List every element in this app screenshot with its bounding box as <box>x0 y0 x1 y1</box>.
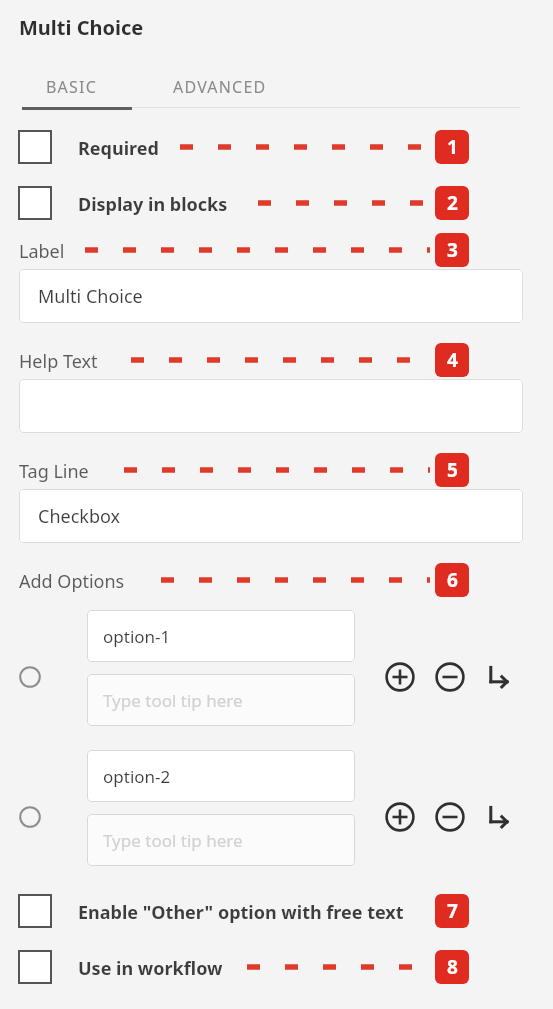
staticText: Multi Choice <box>19 14 144 41</box>
staticText: Display in blocks <box>78 192 228 217</box>
staticText: Enable "Other" option with free text <box>78 900 404 925</box>
staticText: 5 <box>447 457 458 483</box>
button[interactable]: Remove option <box>433 800 467 834</box>
staticText: ADVANCED <box>173 76 267 98</box>
button[interactable]: Branch option <box>481 660 515 694</box>
staticText: Add Options <box>19 569 125 594</box>
button[interactable]: option-2 <box>87 750 355 802</box>
button[interactable]: BASIC <box>22 67 132 107</box>
staticText: Multi Choice <box>38 284 143 309</box>
staticText: option-2 <box>103 765 171 788</box>
button[interactable]: Display in blocks <box>0 175 553 231</box>
staticText: Type tool tip here <box>103 689 243 712</box>
button[interactable] <box>18 950 52 984</box>
button[interactable]: 3 <box>435 233 469 267</box>
staticText: 4 <box>447 347 458 373</box>
button[interactable]: Enable "Other" option with free text <box>0 883 553 939</box>
button[interactable]: Use in workflow <box>0 939 553 995</box>
button[interactable]: 5 <box>435 453 469 487</box>
button[interactable]: Multi Choice <box>19 269 523 323</box>
staticText: Use in workflow <box>78 956 223 981</box>
button[interactable]: Add option <box>383 800 417 834</box>
button[interactable] <box>18 186 52 220</box>
staticText: Required <box>78 136 159 161</box>
button[interactable]: Remove option <box>433 660 467 694</box>
button[interactable]: 7 <box>435 894 469 928</box>
button[interactable]: Type tool tip here <box>87 814 355 866</box>
button[interactable]: Required <box>0 119 553 175</box>
staticText: 6 <box>447 567 458 593</box>
button[interactable]: 1 <box>435 130 469 164</box>
staticText: Type tool tip here <box>103 829 243 852</box>
staticText: Label <box>19 239 65 264</box>
button[interactable]: Select option <box>18 665 42 689</box>
staticText: 8 <box>447 954 458 980</box>
button[interactable] <box>18 130 52 164</box>
staticText: 7 <box>447 898 458 924</box>
button[interactable] <box>19 379 523 433</box>
button[interactable]: Checkbox <box>19 489 523 543</box>
button[interactable]: ADVANCED <box>150 67 290 107</box>
staticText: 2 <box>447 190 458 216</box>
button[interactable] <box>18 894 52 928</box>
button[interactable]: option-1 <box>87 610 355 662</box>
staticText: option-1 <box>103 625 171 648</box>
button[interactable]: 2 <box>435 186 469 220</box>
button[interactable]: 4 <box>435 343 469 377</box>
button[interactable]: Type tool tip here <box>87 674 355 726</box>
button[interactable]: 8 <box>435 950 469 984</box>
staticText: BASIC <box>46 76 97 98</box>
button[interactable]: Select option <box>18 805 42 829</box>
staticText: 1 <box>447 134 458 160</box>
staticText: Checkbox <box>38 504 121 529</box>
staticText: Tag Line <box>19 459 89 484</box>
button[interactable]: Add option <box>383 660 417 694</box>
button[interactable]: Branch option <box>481 800 515 834</box>
staticText: 3 <box>447 237 458 263</box>
button[interactable]: 6 <box>435 563 469 597</box>
staticText: Help Text <box>19 349 98 374</box>
